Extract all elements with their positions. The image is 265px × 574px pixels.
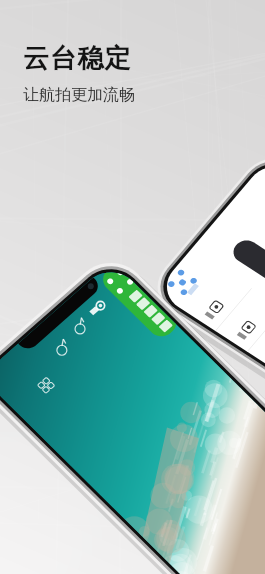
staticText: 让航拍更加流畅 bbox=[23, 85, 135, 105]
staticText: 云台稳定 bbox=[23, 42, 132, 75]
